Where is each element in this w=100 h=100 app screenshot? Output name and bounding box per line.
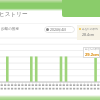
button[interactable]: Menu [62,0,100,17]
staticText: あなたの平均 [82,27,98,30]
staticText: 2024年4月 [50,27,67,32]
staticText: ヒストリー [0,11,28,18]
staticText: あなたの平均 [85,48,100,51]
button[interactable]: 2024年4月 [44,26,75,33]
staticText: 28.4cm [82,32,95,37]
staticText: 歩幅の推移 [1,27,20,32]
staticText: 29.2cm [85,52,99,57]
